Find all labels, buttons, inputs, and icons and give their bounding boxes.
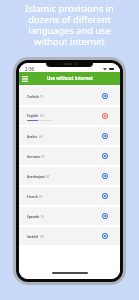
button[interactable]: Download Arabic <box>99 130 111 142</box>
staticText: Azerbaijani <box>27 175 45 179</box>
staticText: Turkish <box>27 95 39 99</box>
button[interactable]: Spanish <box>19 207 120 225</box>
button[interactable]: French <box>19 187 120 205</box>
staticText: AZ <box>46 175 50 179</box>
staticText: Swahili <box>27 235 39 239</box>
staticText: Use without internet <box>47 75 93 81</box>
button[interactable]: German <box>19 147 120 165</box>
staticText: 2:36 <box>25 66 35 72</box>
button[interactable]: Menu <box>19 72 31 85</box>
staticText: TR <box>40 95 44 99</box>
staticText: Islamic provisions in dozens of differen… <box>0 2 139 47</box>
button[interactable]: Download Azerbaijani <box>99 170 111 182</box>
staticText: Arabic <box>27 135 38 139</box>
staticText: FR <box>39 195 43 199</box>
staticText: ES <box>41 215 45 219</box>
button[interactable]: Download French <box>99 190 111 202</box>
button[interactable]: Download Turkish <box>99 90 111 102</box>
button[interactable]: Azerbaijani <box>19 167 120 185</box>
button[interactable]: Download German <box>99 150 111 162</box>
staticText: SW <box>40 235 45 239</box>
button[interactable]: English <box>19 107 120 125</box>
staticText: German <box>27 155 40 159</box>
button[interactable]: Download Swahili <box>99 230 111 242</box>
button[interactable]: Swahili <box>19 227 120 245</box>
button[interactable]: Turkish <box>19 87 120 105</box>
button[interactable]: Download Spanish <box>99 210 111 222</box>
button[interactable]: Download English <box>99 110 111 122</box>
staticText: EN <box>40 114 44 118</box>
staticText: AR <box>39 135 43 139</box>
staticText: French <box>27 195 38 199</box>
staticText: Spanish <box>27 215 40 219</box>
button[interactable]: Arabic <box>19 127 120 145</box>
staticText: DE <box>41 155 45 159</box>
staticText: English <box>27 114 39 118</box>
